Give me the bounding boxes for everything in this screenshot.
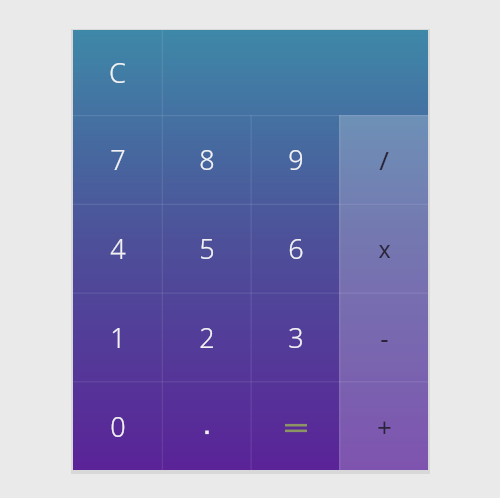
button[interactable]: 3 [251, 293, 340, 382]
button[interactable]: Subtract [340, 293, 428, 382]
button[interactable]: 0 [73, 382, 162, 470]
staticText: 0 [110, 408, 126, 445]
staticText: x [378, 233, 391, 264]
staticText: 7 [110, 141, 126, 178]
staticText: 3 [288, 319, 304, 356]
button[interactable]: Divide [340, 115, 428, 204]
button[interactable]: 8 [162, 115, 251, 204]
button[interactable]: Multiply [340, 204, 428, 293]
staticText: 9 [288, 141, 304, 178]
staticText: 5 [199, 230, 215, 267]
staticText: + [377, 409, 392, 444]
staticText: 1 [110, 319, 126, 356]
staticText: 6 [288, 230, 304, 267]
button[interactable]: 4 [73, 204, 162, 293]
button[interactable]: 6 [251, 204, 340, 293]
staticText: 2 [199, 319, 215, 356]
staticText: C [109, 54, 126, 91]
button[interactable]: 2 [162, 293, 251, 382]
button[interactable]: 9 [251, 115, 340, 204]
button[interactable]: 1 [73, 293, 162, 382]
button[interactable]: Display [162, 30, 428, 115]
button[interactable]: Decimal point [162, 382, 251, 470]
staticText: - [380, 320, 389, 355]
button[interactable]: 7 [73, 115, 162, 204]
staticText: 8 [199, 141, 215, 178]
staticText: 4 [110, 230, 126, 267]
staticText: / [379, 142, 389, 177]
button[interactable]: 5 [162, 204, 251, 293]
button[interactable]: Add [340, 382, 428, 470]
button[interactable]: Equals [251, 382, 340, 470]
button[interactable]: Clear [73, 30, 162, 115]
